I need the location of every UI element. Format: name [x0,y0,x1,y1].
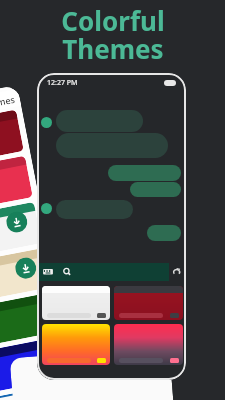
staticText: 12:27 PM [47,78,78,88]
button[interactable] [114,324,183,365]
button[interactable]: Themes [0,393,32,400]
button[interactable]: Undo [171,266,183,278]
button[interactable]: Search [61,266,73,278]
staticText: Colorful [61,3,165,38]
staticText: Themes [62,31,164,66]
button[interactable]: Keyboard [42,266,54,278]
staticText: Featured Themes [0,93,16,119]
button[interactable] [42,324,110,365]
button[interactable] [114,286,183,320]
button[interactable] [42,286,110,320]
